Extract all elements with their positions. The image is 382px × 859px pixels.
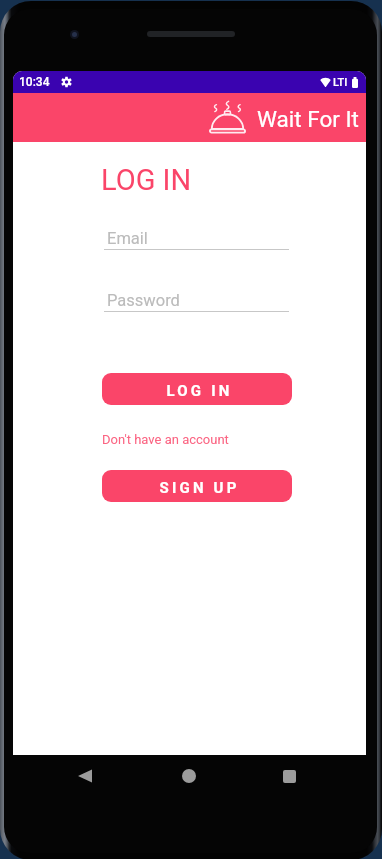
button[interactable]: SIGN UP: [102, 470, 292, 502]
staticText: Don't have an account: [102, 432, 229, 447]
staticText: LTI: [333, 76, 348, 89]
staticText: LOG IN: [166, 382, 233, 400]
button[interactable]: Password: [104, 293, 289, 312]
staticText: 10:34: [19, 75, 50, 89]
button[interactable]: LOG IN: [102, 373, 292, 405]
button[interactable]: Back: [34, 757, 136, 795]
button[interactable]: Recent apps: [238, 757, 340, 795]
staticText: LOG IN: [101, 163, 192, 197]
staticText: SIGN UP: [159, 479, 240, 497]
button[interactable]: Home: [138, 757, 240, 795]
staticText: Wait For It: [257, 106, 359, 132]
staticText: Password: [107, 291, 180, 310]
button[interactable]: Email: [104, 231, 289, 250]
staticText: Email: [107, 229, 148, 248]
